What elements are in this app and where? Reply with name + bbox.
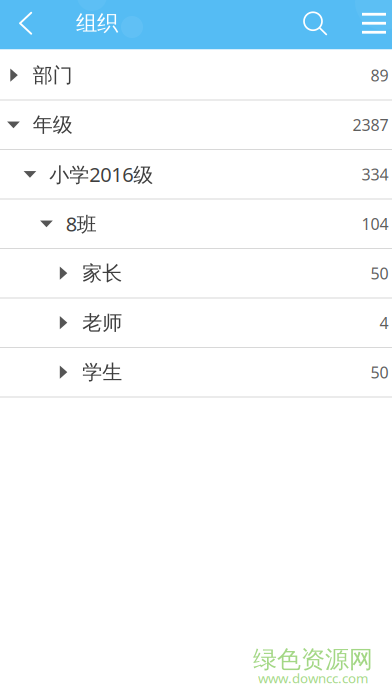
staticText: 50 [370, 362, 388, 383]
staticText: 小学2016级 [49, 161, 153, 188]
button[interactable]: 老师 [0, 298, 392, 348]
staticText: 家长 [82, 261, 122, 286]
staticText: 老师 [82, 310, 122, 335]
staticText: 104 [361, 213, 388, 234]
staticText: 334 [361, 164, 388, 185]
button[interactable]: 学生 [0, 348, 392, 397]
button[interactable]: Back [13, 2, 38, 44]
staticText: 组织 [76, 10, 118, 36]
staticText: 部门 [33, 63, 73, 88]
staticText: 学生 [82, 360, 122, 385]
button[interactable]: 年级 [0, 100, 392, 150]
button[interactable]: Menu [357, 2, 391, 45]
staticText: 绿色资源网 [253, 645, 373, 674]
staticText: 50 [370, 263, 388, 284]
button[interactable]: 部门 [0, 51, 392, 100]
staticText: 8班 [66, 210, 97, 237]
button[interactable]: 小学2016级 [0, 150, 392, 199]
staticText: 2387 [352, 114, 388, 135]
staticText: 89 [370, 65, 388, 86]
staticText: www.downcc.com [258, 669, 368, 687]
button[interactable]: Search [297, 2, 337, 44]
button[interactable]: 家长 [0, 249, 392, 298]
staticText: 年级 [33, 112, 73, 137]
staticText: 4 [379, 312, 388, 333]
button[interactable]: 8班 [0, 199, 392, 249]
